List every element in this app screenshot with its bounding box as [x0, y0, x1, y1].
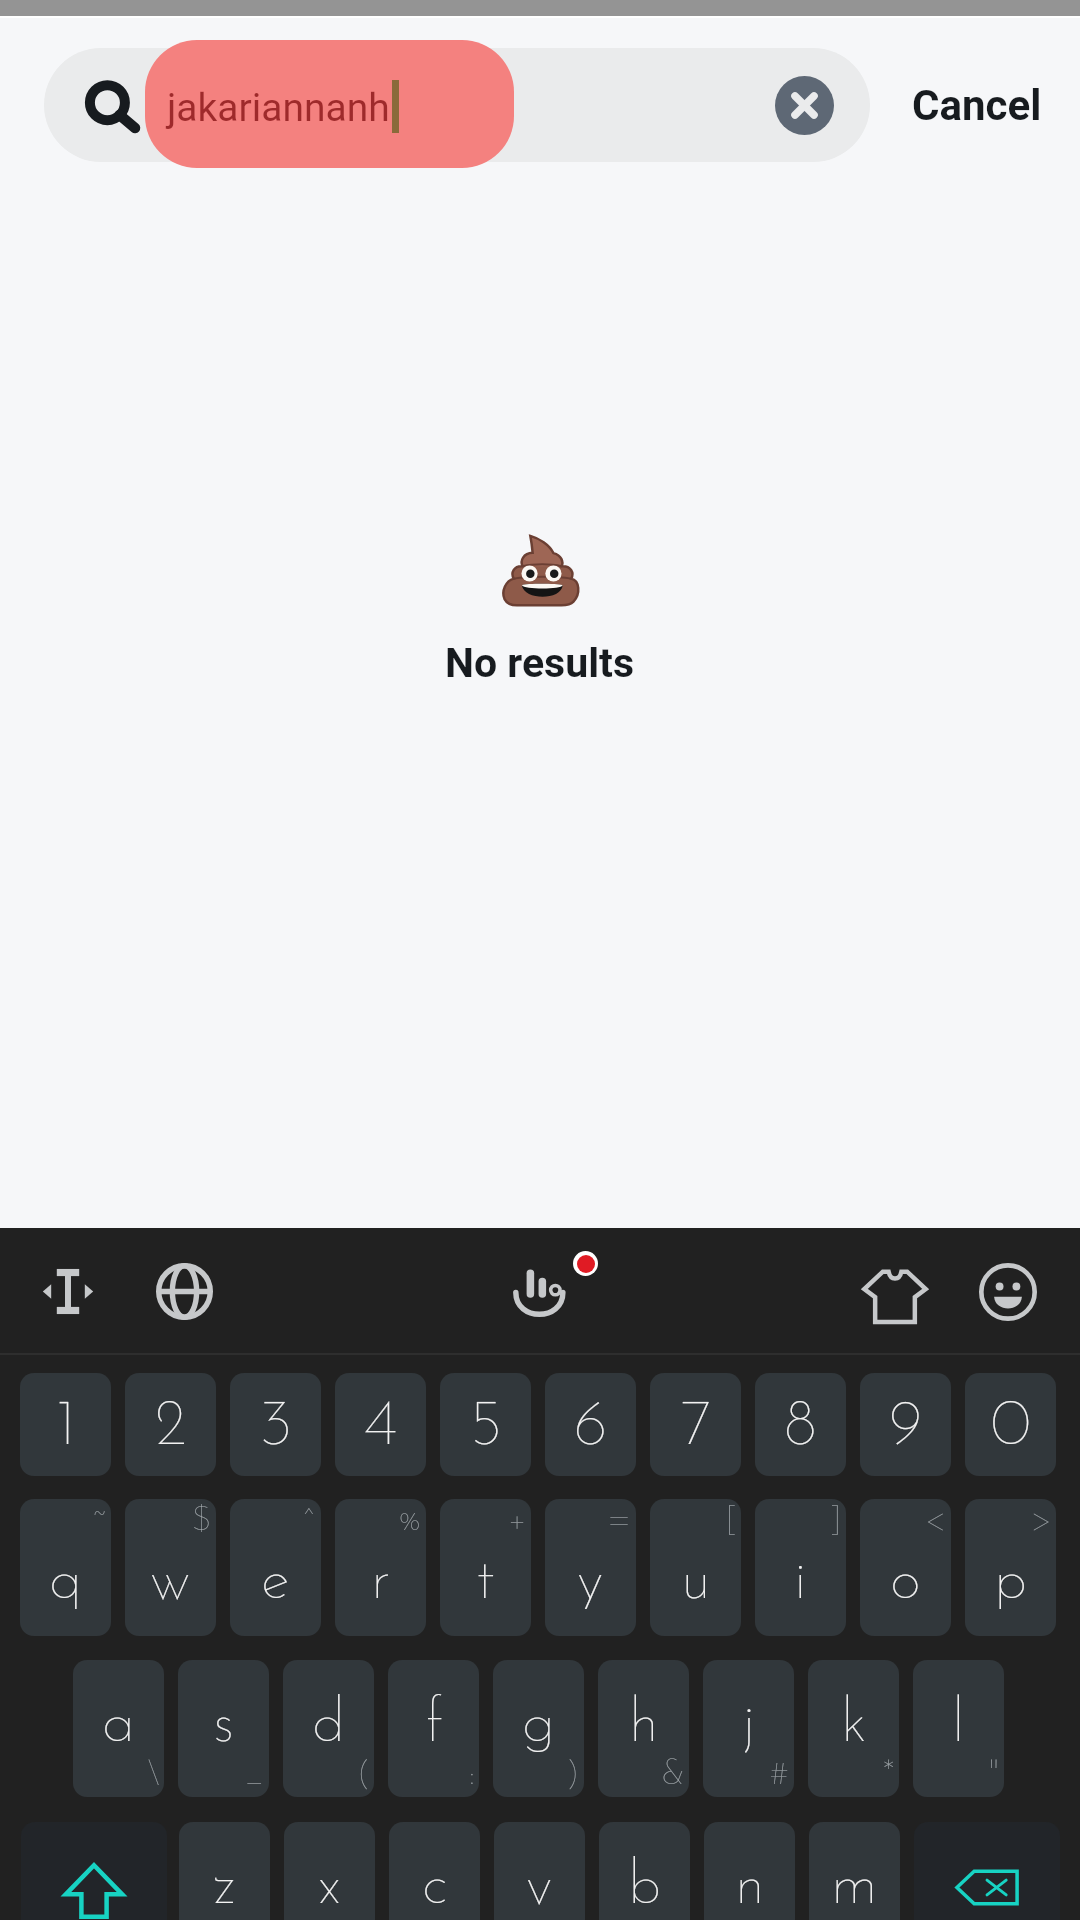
- button[interactable]: Emoji: [979, 1263, 1037, 1321]
- staticText: b: [628, 1857, 662, 1918]
- button[interactable]: b: [599, 1822, 690, 1920]
- button[interactable]: 7: [650, 1373, 741, 1476]
- staticText: 5: [468, 1396, 503, 1460]
- staticText: g: [522, 1695, 556, 1756]
- staticText: d: [312, 1695, 346, 1756]
- button[interactable]: Clear search: [775, 76, 834, 135]
- staticText: x: [318, 1857, 341, 1918]
- staticText: o: [890, 1552, 921, 1613]
- staticText: i: [794, 1552, 807, 1613]
- button[interactable]: l: [913, 1660, 1004, 1797]
- staticText: 7: [680, 1396, 711, 1460]
- staticText: t: [476, 1552, 495, 1613]
- staticText: 9: [889, 1396, 923, 1460]
- staticText: v: [526, 1857, 553, 1918]
- button[interactable]: 9: [860, 1373, 951, 1476]
- button[interactable]: i: [755, 1499, 846, 1636]
- staticText: n: [735, 1857, 765, 1918]
- button[interactable]: 8: [755, 1373, 846, 1476]
- staticText: \: [148, 1758, 160, 1792]
- staticText: w: [150, 1552, 191, 1613]
- button[interactable]: 5: [440, 1373, 531, 1476]
- staticText: &: [661, 1758, 685, 1792]
- button[interactable]: Shift: [21, 1822, 167, 1920]
- staticText: Cancel: [912, 81, 1042, 130]
- staticText: *: [883, 1758, 895, 1792]
- staticText: ): [566, 1758, 580, 1792]
- staticText: m: [831, 1857, 878, 1918]
- button[interactable]: v: [494, 1822, 585, 1920]
- staticText: ~: [93, 1504, 107, 1538]
- button[interactable]: o: [860, 1499, 951, 1636]
- button[interactable]: Change language: [155, 1262, 214, 1321]
- staticText: >: [1030, 1504, 1052, 1538]
- button[interactable]: e: [230, 1499, 321, 1636]
- button[interactable]: s: [178, 1660, 269, 1797]
- staticText: h: [629, 1695, 659, 1756]
- button[interactable]: m: [809, 1822, 900, 1920]
- staticText: u: [681, 1552, 711, 1613]
- staticText: r: [371, 1552, 391, 1613]
- staticText: a: [102, 1695, 136, 1756]
- button[interactable]: 3: [230, 1373, 321, 1476]
- staticText: (: [356, 1758, 370, 1792]
- staticText: _: [244, 1758, 265, 1792]
- button[interactable]: u: [650, 1499, 741, 1636]
- staticText: <: [924, 1504, 947, 1538]
- button[interactable]: d: [283, 1660, 374, 1797]
- staticText: j: [742, 1695, 756, 1756]
- staticText: f: [425, 1695, 443, 1756]
- staticText: c: [422, 1857, 448, 1918]
- button[interactable]: y: [545, 1499, 636, 1636]
- button[interactable]: k: [808, 1660, 899, 1797]
- other: Search: [80, 75, 144, 139]
- staticText: 6: [574, 1396, 608, 1460]
- button[interactable]: p: [965, 1499, 1056, 1636]
- button[interactable]: t: [440, 1499, 531, 1636]
- staticText: k: [841, 1695, 867, 1756]
- staticText: No results: [445, 639, 635, 687]
- button[interactable]: 4: [335, 1373, 426, 1476]
- button[interactable]: 2: [125, 1373, 216, 1476]
- staticText: ^: [301, 1504, 317, 1538]
- button[interactable]: Move cursor: [40, 1264, 96, 1319]
- staticText: [: [725, 1504, 737, 1538]
- staticText: 0: [991, 1396, 1031, 1460]
- button[interactable]: z: [179, 1822, 270, 1920]
- staticText: p: [994, 1552, 1028, 1613]
- button[interactable]: h: [598, 1660, 689, 1797]
- button[interactable]: Cancel: [893, 48, 1060, 162]
- button[interactable]: a: [73, 1660, 164, 1797]
- button[interactable]: Themes: [862, 1263, 928, 1329]
- button[interactable]: g: [493, 1660, 584, 1797]
- staticText: =: [607, 1504, 632, 1538]
- button[interactable]: 6: [545, 1373, 636, 1476]
- staticText: $: [192, 1504, 212, 1538]
- staticText: %: [397, 1504, 422, 1538]
- staticText: 3: [259, 1396, 293, 1460]
- staticText: #: [770, 1758, 790, 1792]
- button[interactable]: 0: [965, 1373, 1056, 1476]
- button[interactable]: r: [335, 1499, 426, 1636]
- staticText: :: [469, 1758, 475, 1792]
- button[interactable]: n: [704, 1822, 795, 1920]
- button[interactable]: f: [388, 1660, 479, 1797]
- staticText: 4: [364, 1396, 397, 1460]
- button[interactable]: 1: [20, 1373, 111, 1476]
- staticText: l: [952, 1695, 965, 1756]
- button[interactable]: x: [284, 1822, 375, 1920]
- staticText: y: [577, 1552, 604, 1613]
- staticText: +: [508, 1504, 527, 1538]
- button[interactable]: c: [389, 1822, 480, 1920]
- button[interactable]: w: [125, 1499, 216, 1636]
- staticText: z: [213, 1857, 236, 1918]
- staticText: ]: [830, 1504, 842, 1538]
- button[interactable]: Keyboard settings: [514, 1268, 566, 1320]
- button[interactable]: j: [703, 1660, 794, 1797]
- button[interactable]: q: [20, 1499, 111, 1636]
- button[interactable]: Backspace: [914, 1822, 1060, 1920]
- button[interactable]: [44, 48, 870, 162]
- staticText: q: [49, 1552, 83, 1613]
- staticText: jakariannanh: [167, 85, 390, 131]
- staticText: e: [261, 1552, 290, 1613]
